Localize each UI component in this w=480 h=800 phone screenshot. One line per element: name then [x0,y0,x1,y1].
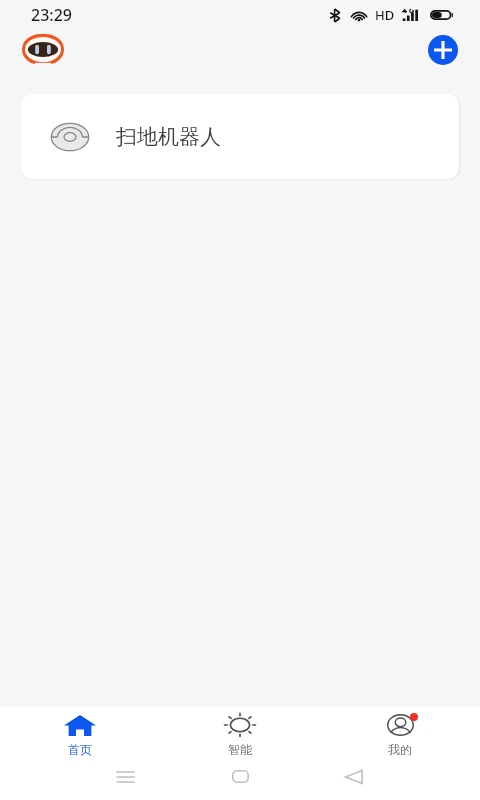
button[interactable]: 扫地机器人 [21,94,459,179]
button[interactable]: Recent apps [106,760,145,793]
button[interactable]: App logo [22,34,64,65]
button[interactable]: Add device [428,35,458,65]
button[interactable]: Home [221,760,259,793]
staticText: 首页 [68,742,92,757]
button[interactable]: 我的 [320,707,480,763]
staticText: 扫地机器人 [116,124,221,150]
button[interactable]: 首页 [0,707,160,763]
button[interactable]: Back [334,760,373,793]
button[interactable]: 智能 [160,707,320,763]
staticText: 我的 [388,742,412,757]
staticText: HD [375,6,395,24]
staticText: 23:29 [31,4,72,26]
staticText: 智能 [228,742,252,757]
